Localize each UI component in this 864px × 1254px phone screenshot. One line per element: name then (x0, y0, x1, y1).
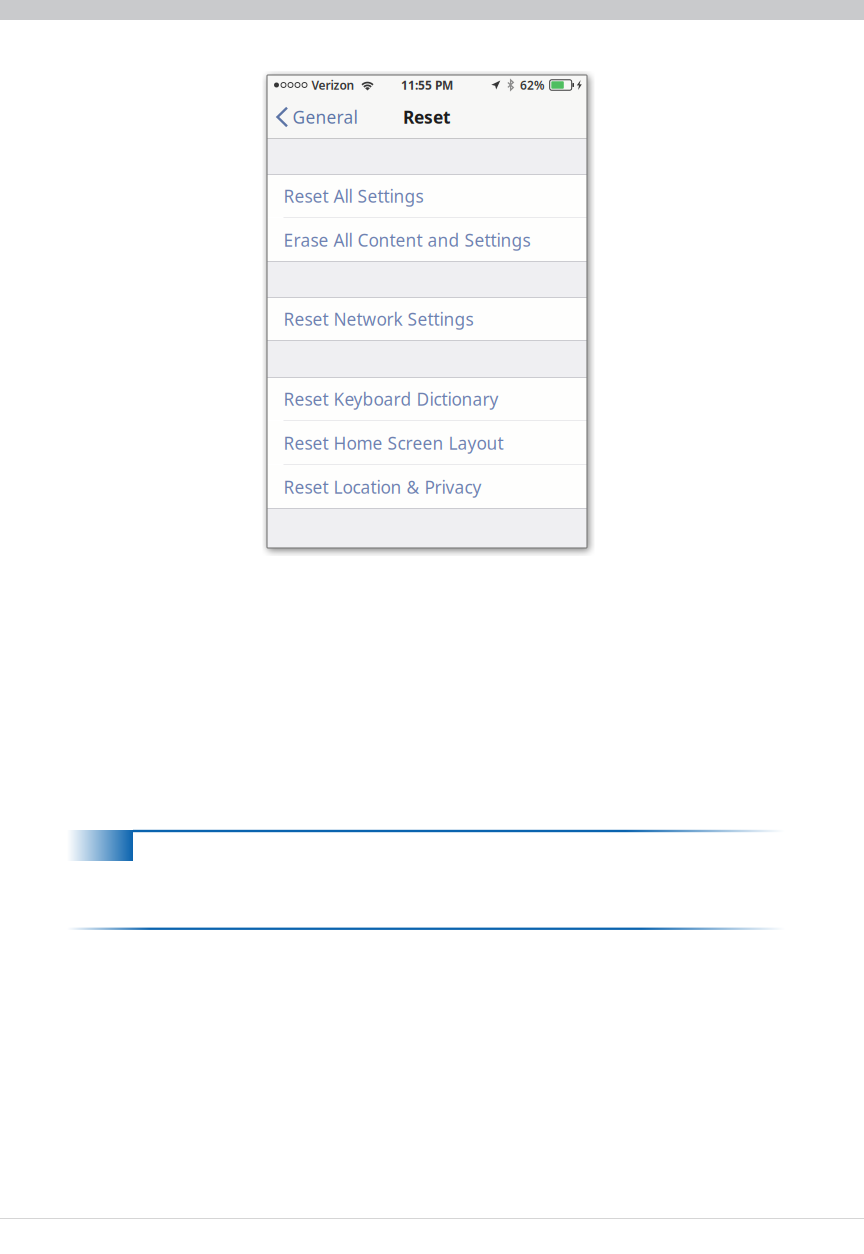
staticText: Reset All Settings (283, 184, 423, 207)
staticText: Verizon (311, 77, 354, 93)
button[interactable]: Reset Keyboard Dictionary (267, 377, 587, 421)
staticText: Reset (403, 105, 451, 128)
staticText: General (292, 105, 357, 128)
staticText: Reset Keyboard Dictionary (283, 387, 498, 410)
button[interactable]: Reset Network Settings (267, 297, 587, 341)
staticText: 62% (520, 77, 545, 93)
button[interactable]: Reset Location & Privacy (267, 465, 587, 509)
button[interactable]: Reset All Settings (267, 174, 587, 218)
button[interactable]: General (267, 95, 363, 139)
button[interactable]: Erase All Content and Settings (267, 218, 587, 262)
staticText: Erase All Content and Settings (283, 228, 530, 251)
staticText: Reset Network Settings (283, 307, 473, 330)
button[interactable]: Reset Home Screen Layout (267, 421, 587, 465)
staticText: Reset Location & Privacy (283, 475, 481, 498)
staticText: 11:55 PM (401, 77, 453, 93)
staticText: Reset Home Screen Layout (283, 431, 503, 454)
